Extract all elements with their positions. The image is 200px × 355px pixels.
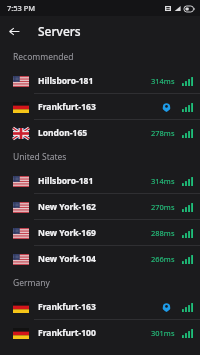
button[interactable]: Frankfurt-100 — [0, 320, 200, 346]
staticText: 314ms — [151, 76, 175, 86]
staticText: 314ms — [151, 176, 175, 186]
staticText: Frankfurt-163 — [38, 301, 160, 313]
staticText: Frankfurt-163 — [38, 101, 160, 113]
staticText: 270ms — [151, 202, 175, 212]
button[interactable]: Frankfurt-163 — [0, 94, 200, 120]
staticText: New York-169 — [38, 227, 151, 239]
button[interactable]: Hillsboro-181 — [0, 168, 200, 194]
staticText: 278ms — [151, 128, 175, 138]
staticText: 7:53 PM — [7, 3, 36, 13]
staticText: 288ms — [151, 228, 175, 238]
button[interactable]: Location — [160, 301, 172, 313]
staticText: New York-104 — [38, 253, 151, 265]
button[interactable]: Hillsboro-181 — [0, 68, 200, 94]
staticText: Servers — [38, 23, 81, 39]
staticText: New York-162 — [38, 201, 151, 213]
button[interactable]: New York-104 — [0, 246, 200, 272]
staticText: Hillsboro-181 — [38, 75, 151, 87]
button[interactable]: New York-162 — [0, 194, 200, 220]
staticText: Recommended — [13, 51, 74, 63]
button[interactable]: Location — [160, 101, 172, 113]
button[interactable]: New York-169 — [0, 220, 200, 246]
staticText: Germany — [13, 277, 50, 289]
button[interactable]: London-165 — [0, 120, 200, 146]
button[interactable]: Back — [5, 22, 23, 40]
staticText: London-165 — [38, 127, 151, 139]
staticText: 301ms — [151, 328, 175, 338]
staticText: Frankfurt-100 — [38, 327, 151, 339]
staticText: Hillsboro-181 — [38, 175, 151, 187]
staticText: 266ms — [151, 254, 175, 264]
staticText: United States — [13, 151, 67, 163]
button[interactable]: Frankfurt-163 — [0, 294, 200, 320]
